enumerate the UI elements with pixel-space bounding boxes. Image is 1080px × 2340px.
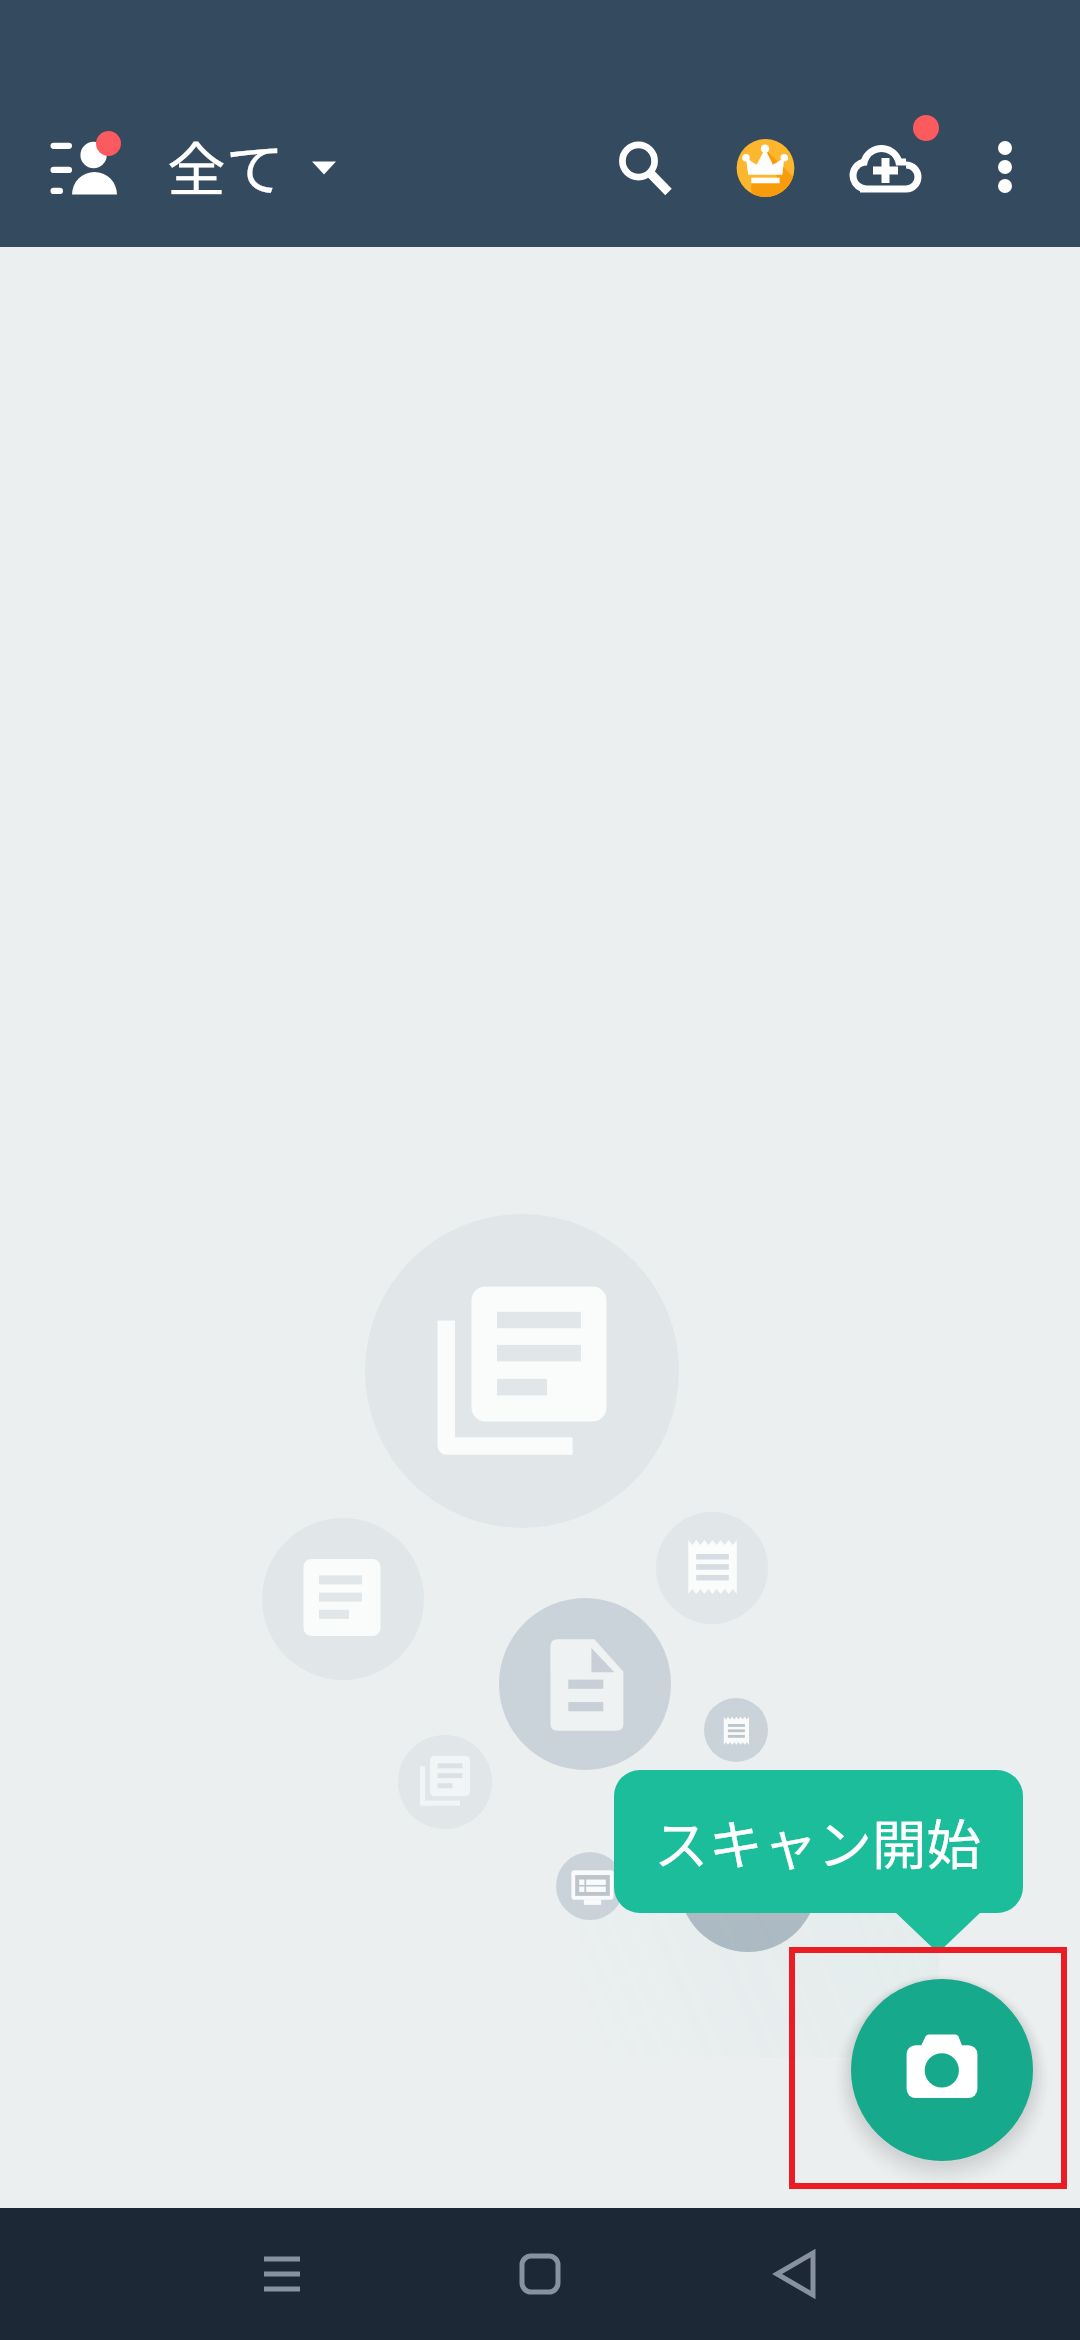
- staticText: 全て: [167, 123, 285, 208]
- button[interactable]: Accounts: [30, 97, 146, 213]
- button[interactable]: More options: [953, 113, 1057, 217]
- button[interactable]: Upload to cloud: [831, 113, 939, 221]
- button[interactable]: Recent apps: [237, 2229, 327, 2319]
- button[interactable]: Home: [495, 2229, 585, 2319]
- button[interactable]: Back: [751, 2229, 841, 2319]
- staticText: スキャン開始: [654, 1802, 982, 1881]
- button[interactable]: 全て: [160, 110, 360, 204]
- button[interactable]: Start scan: [851, 1979, 1033, 2161]
- button[interactable]: Search: [590, 113, 698, 221]
- button[interactable]: スキャン開始: [614, 1770, 1023, 1913]
- button[interactable]: Premium: [711, 113, 819, 221]
